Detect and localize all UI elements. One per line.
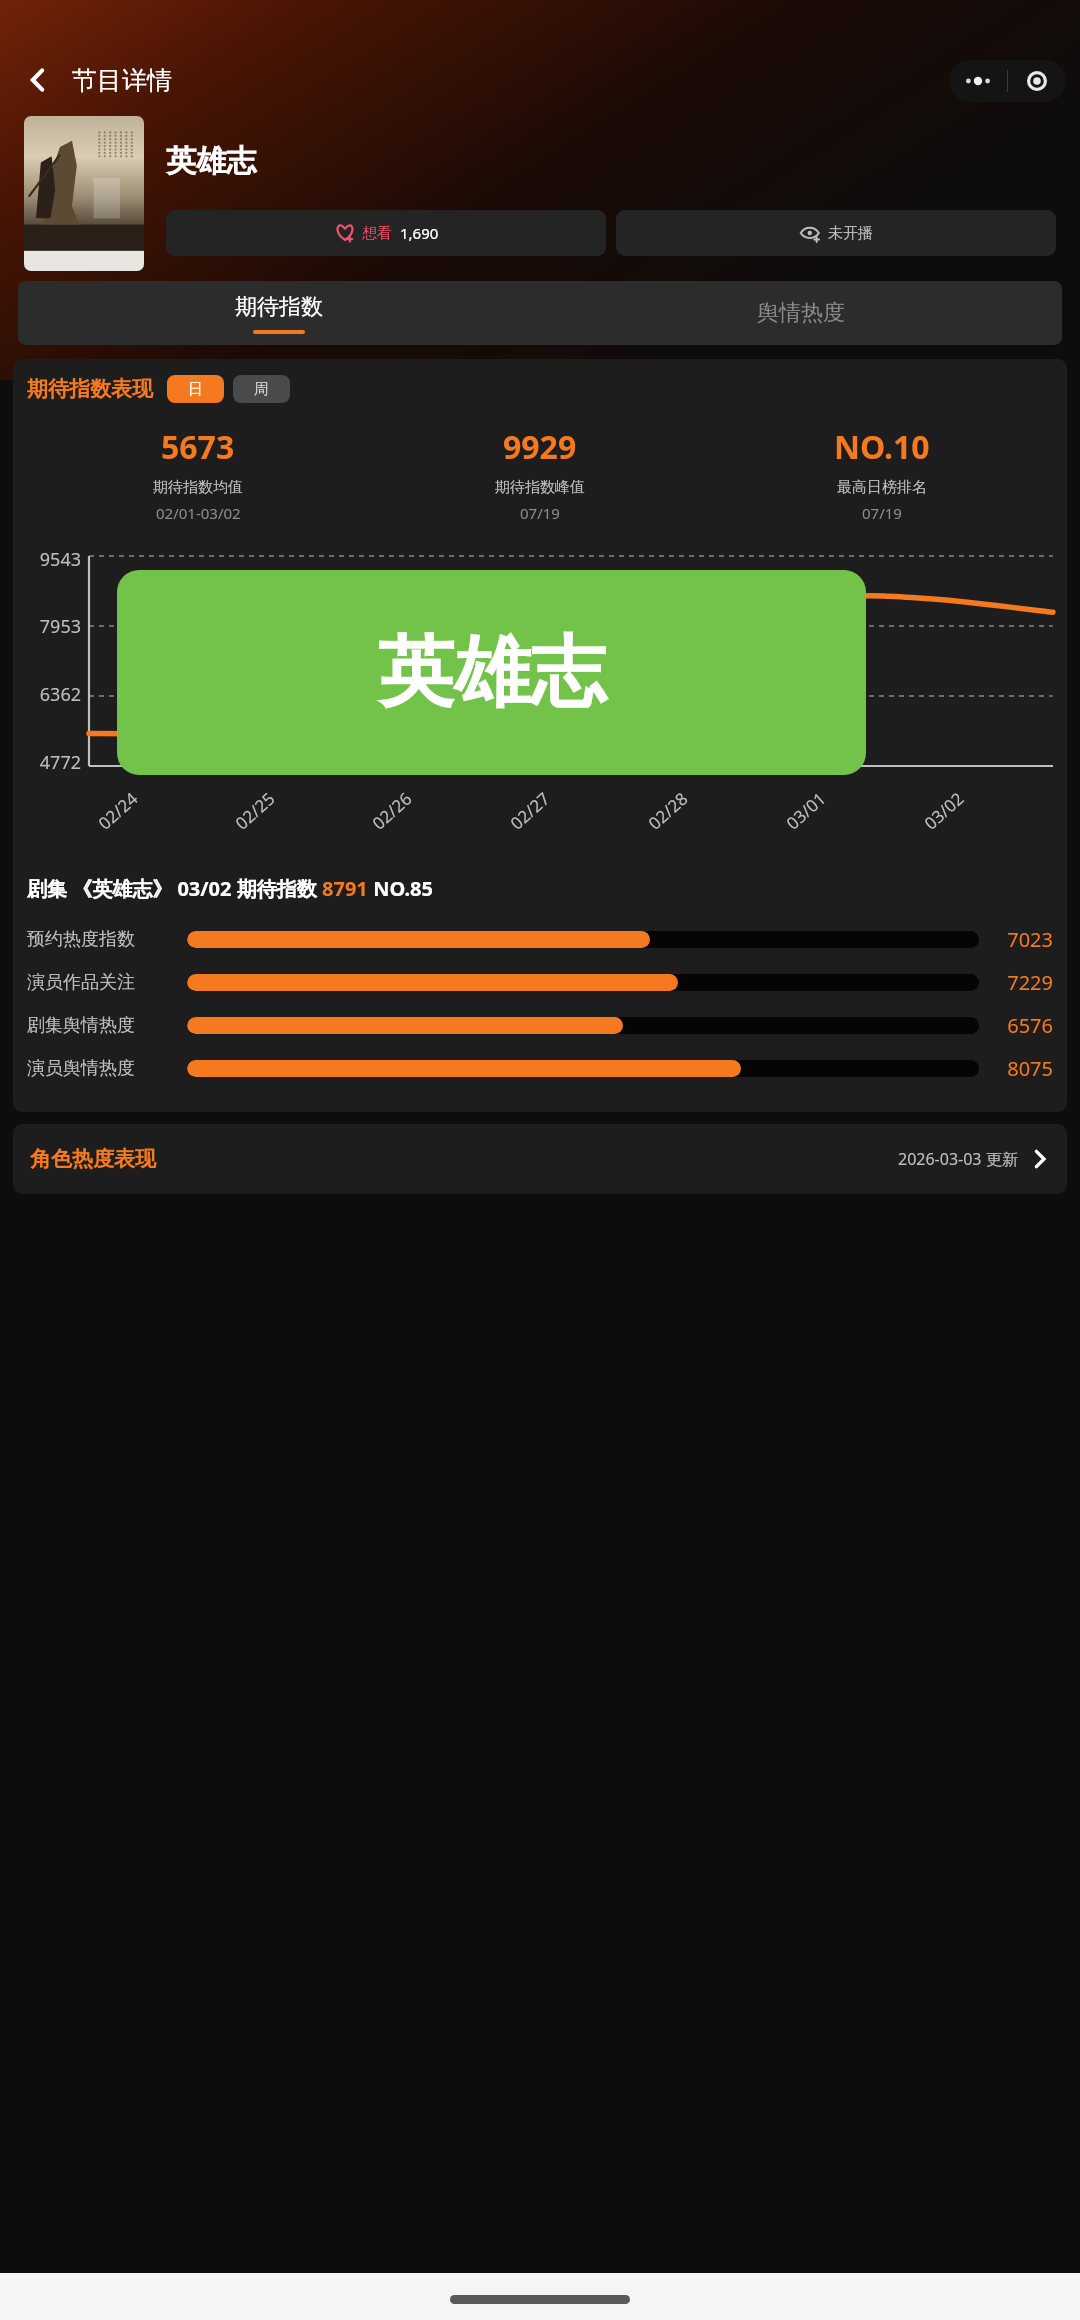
staticText: 4772 (39, 750, 81, 775)
staticText: 03/01 (781, 787, 831, 834)
staticText: 周 (254, 380, 269, 399)
staticText: 07/19 (862, 503, 902, 523)
button[interactable]: 周 (233, 375, 290, 403)
button[interactable]: Poster (24, 116, 144, 271)
staticText: 1,690 (400, 223, 439, 243)
staticText: 演员作品关注 (27, 971, 175, 994)
staticText: 02/28 (643, 787, 693, 834)
button[interactable]: 日 (167, 375, 224, 403)
button[interactable]: 未开播 (616, 210, 1056, 256)
button[interactable]: 预约热度指数 (27, 918, 1053, 961)
staticText: 6362 (39, 682, 81, 707)
button[interactable]: 角色热度表现 (13, 1124, 1067, 1194)
staticText: 舆情热度 (757, 299, 845, 327)
staticText: 最高日榜排名 (837, 478, 927, 497)
staticText: 02/26 (367, 787, 417, 834)
staticText: 8791 (322, 875, 368, 902)
staticText: 剧集舆情热度 (27, 1014, 175, 1037)
staticText: 演员舆情热度 (27, 1057, 175, 1080)
staticText: 期待指数 (235, 293, 323, 321)
staticText: NO.85 (368, 875, 433, 902)
staticText: 节目详情 (72, 65, 172, 96)
button[interactable]: 期待指数 (18, 281, 540, 345)
staticText: 7229 (991, 969, 1053, 996)
staticText: 剧集 《英雄志》 03/02 期待指数 (27, 875, 322, 902)
staticText: 02/25 (230, 787, 280, 834)
staticText: 2026-03-03 更新 (898, 1148, 1018, 1170)
staticText: 02/24 (93, 787, 143, 834)
button[interactable]: 想看 (166, 210, 606, 256)
staticText: 预约热度指数 (27, 928, 175, 951)
staticText: 日 (188, 380, 203, 399)
staticText: 期待指数峰值 (495, 478, 585, 497)
button[interactable]: 剧集舆情热度 (27, 1004, 1053, 1047)
staticText: 期待指数表现 (27, 376, 153, 402)
button[interactable]: 英雄志 (117, 570, 866, 775)
staticText: 角色热度表现 (30, 1146, 156, 1172)
staticText: 03/02 (919, 787, 969, 834)
button[interactable]: Back (14, 56, 62, 104)
staticText: 9543 (39, 547, 81, 572)
staticText: 8075 (991, 1055, 1053, 1082)
staticText: 6576 (991, 1012, 1053, 1039)
staticText: 想看 (362, 224, 392, 243)
staticText: 未开播 (828, 224, 873, 243)
staticText: 期待指数均值 (153, 478, 243, 497)
staticText: 7023 (991, 926, 1053, 953)
staticText: 9929 (503, 425, 577, 469)
staticText: 7953 (39, 614, 81, 639)
staticText: 07/19 (520, 503, 560, 523)
button[interactable]: 演员舆情热度 (27, 1047, 1053, 1090)
staticText: NO.10 (834, 425, 930, 469)
button[interactable]: 舆情热度 (540, 281, 1062, 345)
button[interactable]: More options and close (949, 60, 1066, 102)
staticText: 英雄志 (166, 142, 256, 180)
staticText: 英雄志 (378, 625, 606, 721)
staticText: 02/27 (505, 787, 555, 834)
staticText: 02/01-03/02 (156, 503, 241, 523)
staticText: 5673 (161, 425, 235, 469)
button[interactable]: 演员作品关注 (27, 961, 1053, 1004)
